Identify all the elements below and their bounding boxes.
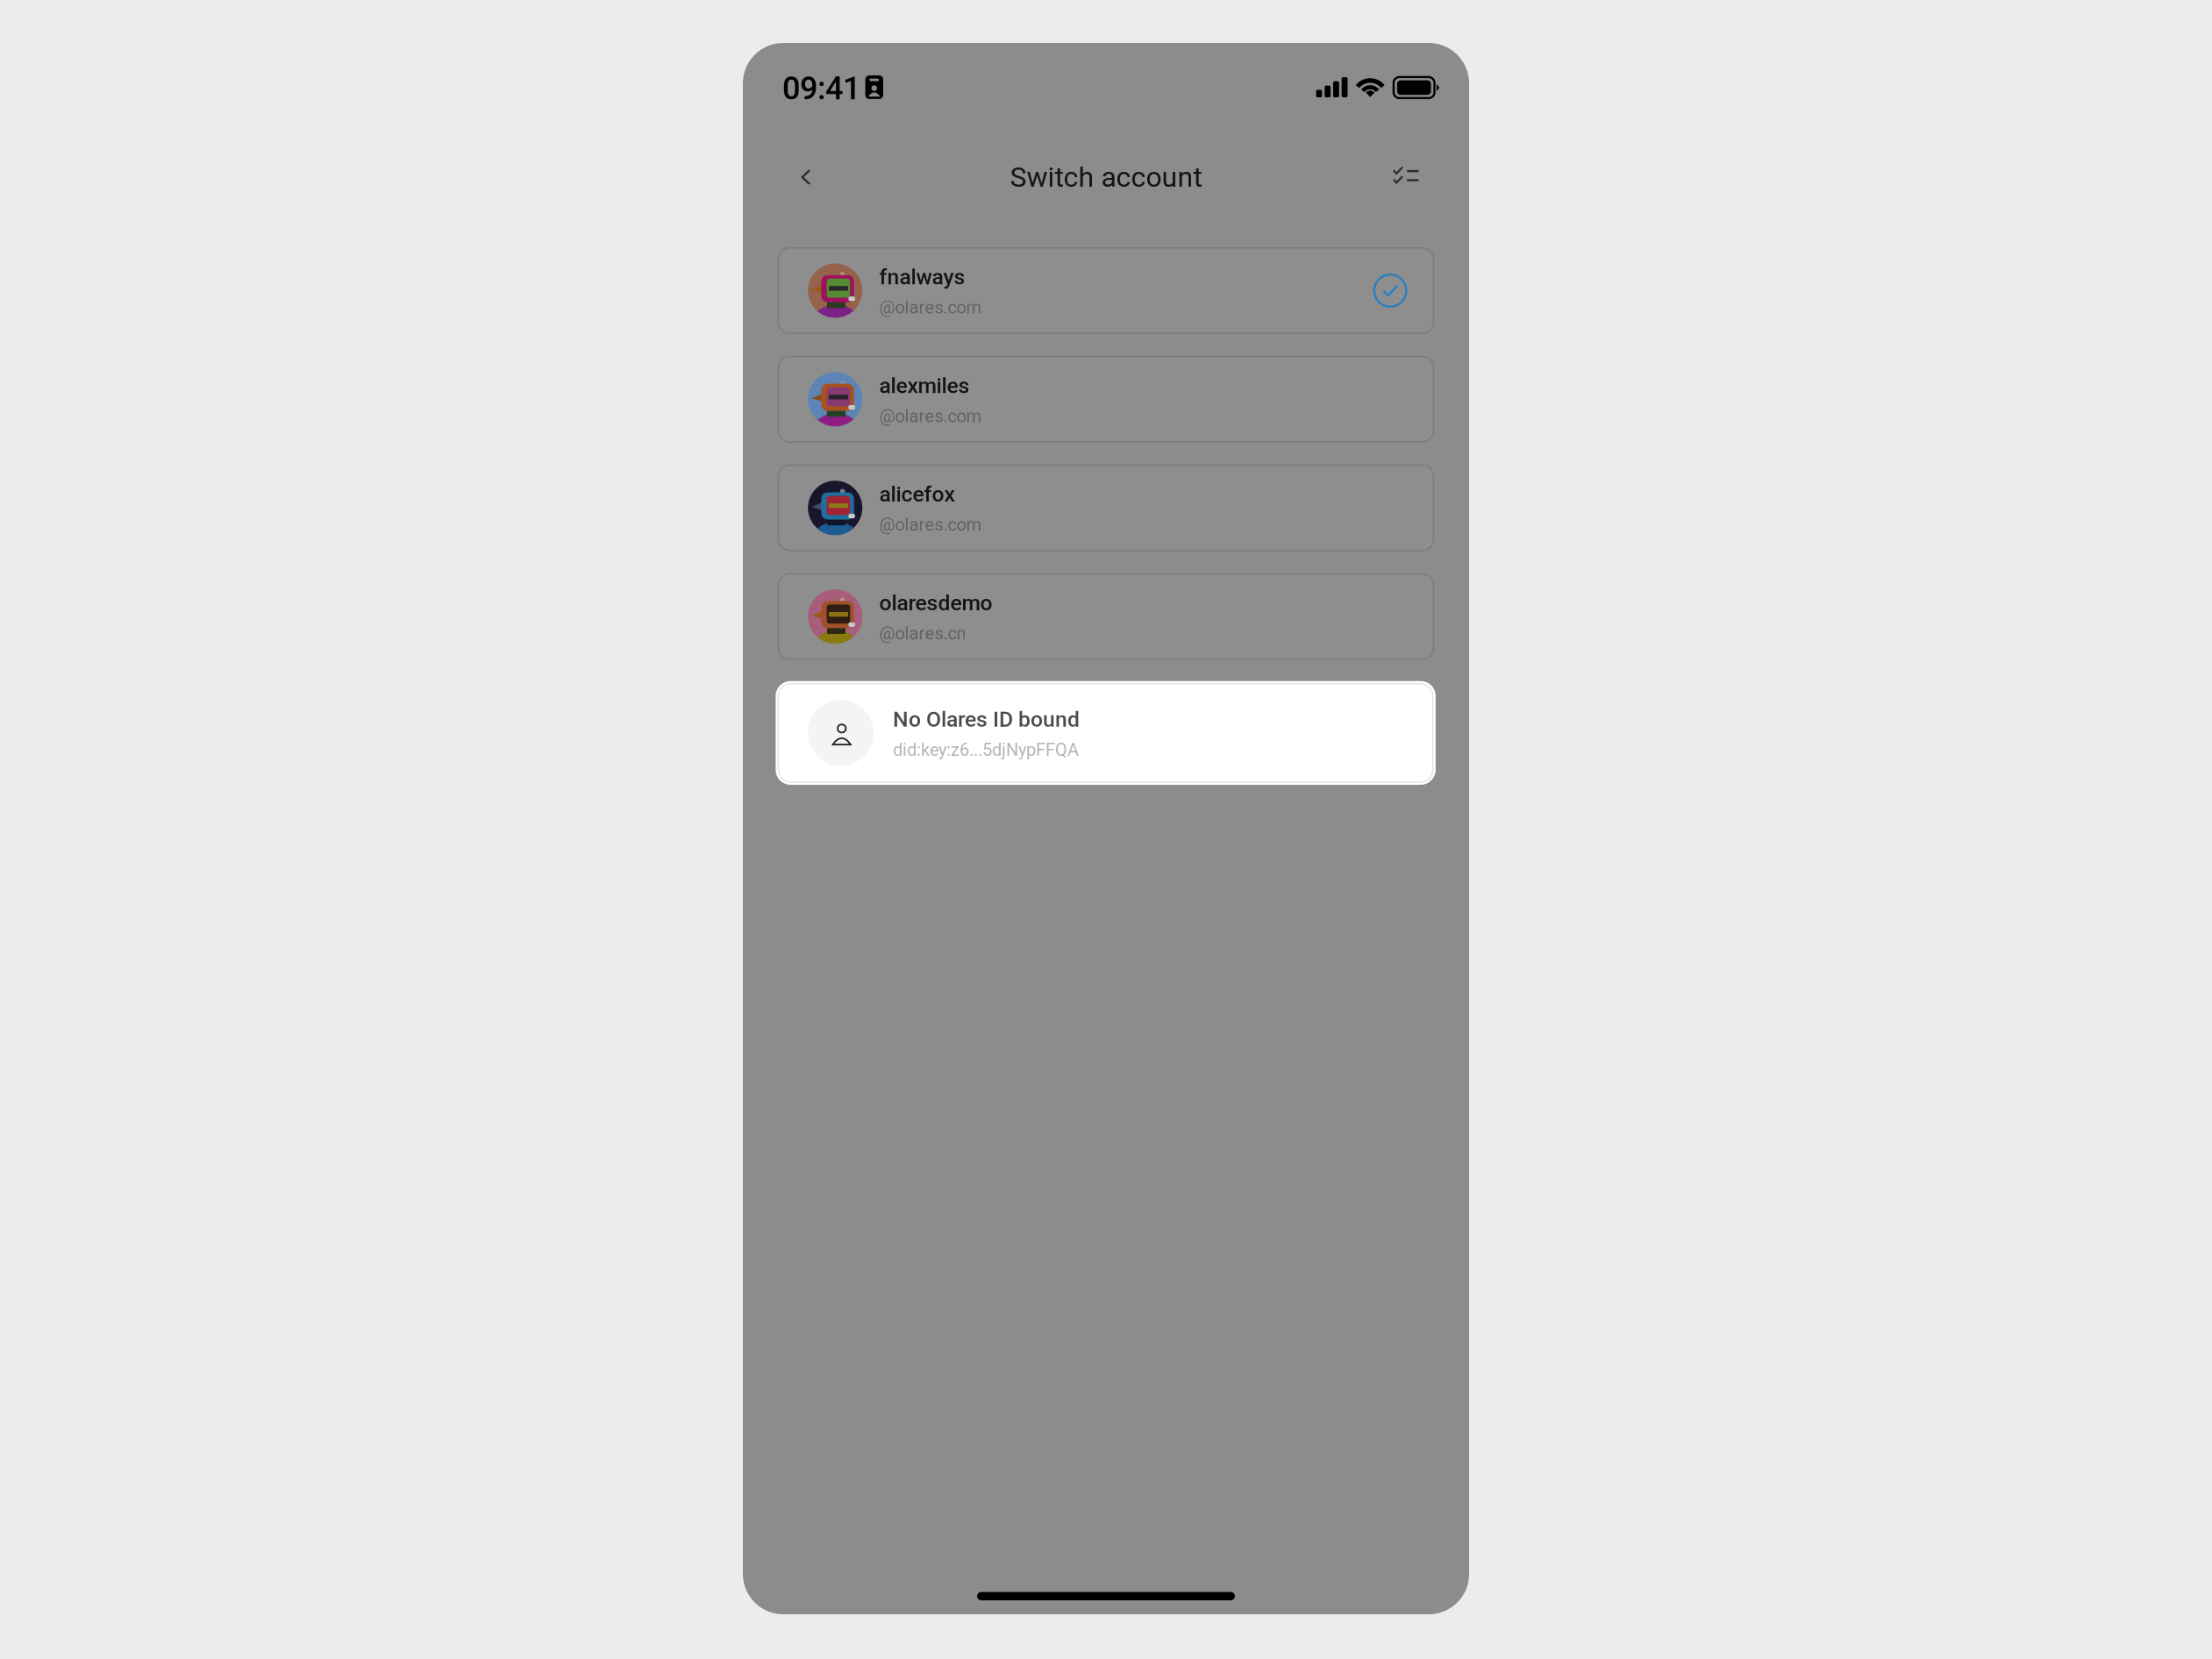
staticText: Switch account	[1010, 161, 1202, 194]
button[interactable]: olaresdemo	[778, 574, 1434, 659]
button[interactable]: No Olares ID bound	[776, 681, 1436, 785]
staticText: @olares.com	[879, 297, 982, 318]
button[interactable]: alicefox	[778, 465, 1434, 551]
staticText: did:key:z6...5djNypFFQA	[893, 740, 1079, 760]
staticText: @olares.com	[879, 515, 982, 535]
staticText: @olares.com	[879, 406, 982, 426]
staticText: 09:41	[782, 70, 860, 107]
button[interactable]: Select accounts	[1379, 155, 1432, 197]
staticText: fnalways	[879, 264, 965, 290]
button[interactable]: fnalways	[778, 248, 1434, 333]
button[interactable]: alexmiles	[778, 357, 1434, 442]
staticText: alicefox	[879, 481, 955, 507]
staticText: olaresdemo	[879, 590, 992, 615]
staticText: @olares.cn	[879, 623, 966, 644]
staticText: No Olares ID bound	[893, 707, 1080, 732]
staticText: alexmiles	[879, 373, 970, 398]
button[interactable]: Back	[786, 156, 826, 198]
